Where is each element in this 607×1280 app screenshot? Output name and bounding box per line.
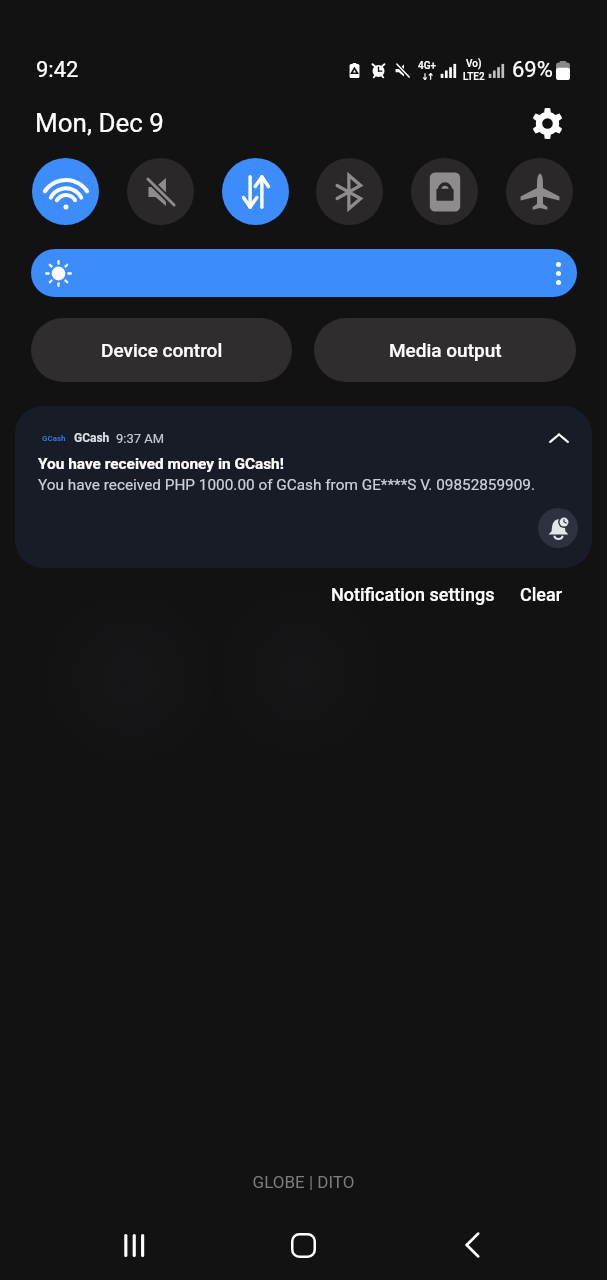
staticText: GLOBE | DITO: [0, 1172, 607, 1192]
staticText: You have received PHP 1000.00 of GCash f…: [38, 476, 536, 494]
staticText: Vo): [466, 58, 482, 70]
staticText: LTE2: [463, 71, 485, 83]
button[interactable]: Lock: [411, 158, 478, 225]
button[interactable]: Device control: [31, 318, 292, 382]
button[interactable]: Media output: [314, 318, 576, 382]
staticText: You have received money in GCash!: [38, 455, 284, 473]
button[interactable]: Settings: [527, 103, 567, 143]
button[interactable]: GCash: [15, 406, 592, 568]
button[interactable]: Bluetooth: [316, 158, 383, 225]
button[interactable]: Collapse: [539, 418, 579, 458]
button[interactable]: Wi-Fi: [32, 158, 99, 225]
button[interactable]: Clear: [510, 578, 573, 611]
staticText: 9:37 AM: [116, 431, 165, 446]
staticText: GCash: [74, 431, 110, 445]
staticText: Notification settings: [331, 584, 495, 605]
button[interactable]: Home: [279, 1221, 327, 1269]
button[interactable]: Sound: [127, 158, 194, 225]
staticText: 4G+: [418, 60, 437, 72]
staticText: 69%: [512, 57, 553, 83]
button[interactable]: Airplane mode: [506, 158, 573, 225]
staticText: 9:42: [36, 57, 79, 83]
button[interactable]: Recent apps: [109, 1221, 157, 1269]
staticText: Clear: [520, 584, 563, 605]
staticText: Device control: [101, 339, 223, 361]
button[interactable]: Brightness: [31, 249, 577, 297]
staticText: GCash: [42, 434, 66, 443]
button[interactable]: Notification settings: [321, 578, 505, 611]
staticText: Media output: [389, 339, 502, 361]
button[interactable]: Back: [448, 1221, 496, 1269]
button[interactable]: Snooze notification: [538, 508, 578, 548]
button[interactable]: Mobile data: [222, 158, 289, 225]
staticText: Mon, Dec 9: [35, 108, 164, 138]
